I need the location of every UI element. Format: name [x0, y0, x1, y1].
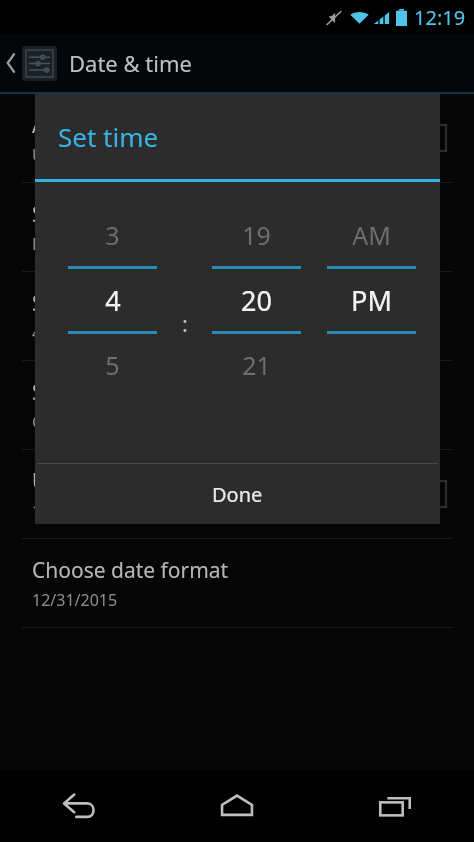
- button[interactable]: Select time zone: [0, 361, 474, 449]
- staticText: Automatic date & time: [32, 111, 254, 140]
- button[interactable]: Set time: [0, 272, 474, 360]
- staticText: 3: [105, 218, 120, 252]
- staticText: :: [182, 308, 188, 338]
- staticText: 20: [241, 282, 272, 319]
- staticText: Select time zone: [32, 378, 194, 407]
- button[interactable]: Automatic date & time: [0, 94, 474, 182]
- staticText: Use 24-hour format: [32, 467, 226, 496]
- staticText: 5: [105, 348, 120, 382]
- staticText: 12/31/2015: [32, 589, 118, 611]
- button[interactable]: AM: [314, 182, 429, 463]
- staticText: AM: [352, 218, 391, 252]
- staticText: Date & time: [69, 48, 192, 78]
- button[interactable]: 3: [55, 182, 170, 463]
- staticText: 4:19 PM: [32, 322, 93, 344]
- button[interactable]: Home: [158, 770, 316, 842]
- other: Back: [4, 50, 18, 76]
- button[interactable]: Choose date format: [0, 539, 474, 627]
- staticText: Choose date format: [32, 556, 229, 585]
- staticText: 19: [242, 218, 271, 252]
- staticText: Set time: [32, 289, 113, 318]
- staticText: 4: [105, 282, 121, 319]
- staticText: GMT+00:00: [32, 411, 118, 433]
- button[interactable]: Back: [0, 770, 158, 842]
- button[interactable]: Toggle: [420, 125, 446, 151]
- staticText: PM: [351, 282, 392, 319]
- staticText: Use network-provided time: [32, 144, 237, 166]
- button[interactable]: Recent apps: [316, 770, 474, 842]
- staticText: 12:19: [414, 4, 466, 31]
- staticText: Set time: [58, 119, 159, 154]
- staticText: Done: [212, 481, 263, 508]
- button[interactable]: Toggle: [420, 481, 446, 507]
- button[interactable]: Done: [35, 464, 440, 524]
- button[interactable]: Back: [0, 34, 474, 92]
- staticText: 21: [242, 348, 271, 382]
- button[interactable]: Use 24-hour format: [0, 450, 474, 538]
- button[interactable]: 19: [199, 182, 314, 463]
- staticText: Set date: [32, 200, 113, 229]
- staticText: 1:00 PM: [32, 500, 93, 522]
- staticText: December 31, 2015: [32, 233, 178, 255]
- button[interactable]: Set date: [0, 183, 474, 271]
